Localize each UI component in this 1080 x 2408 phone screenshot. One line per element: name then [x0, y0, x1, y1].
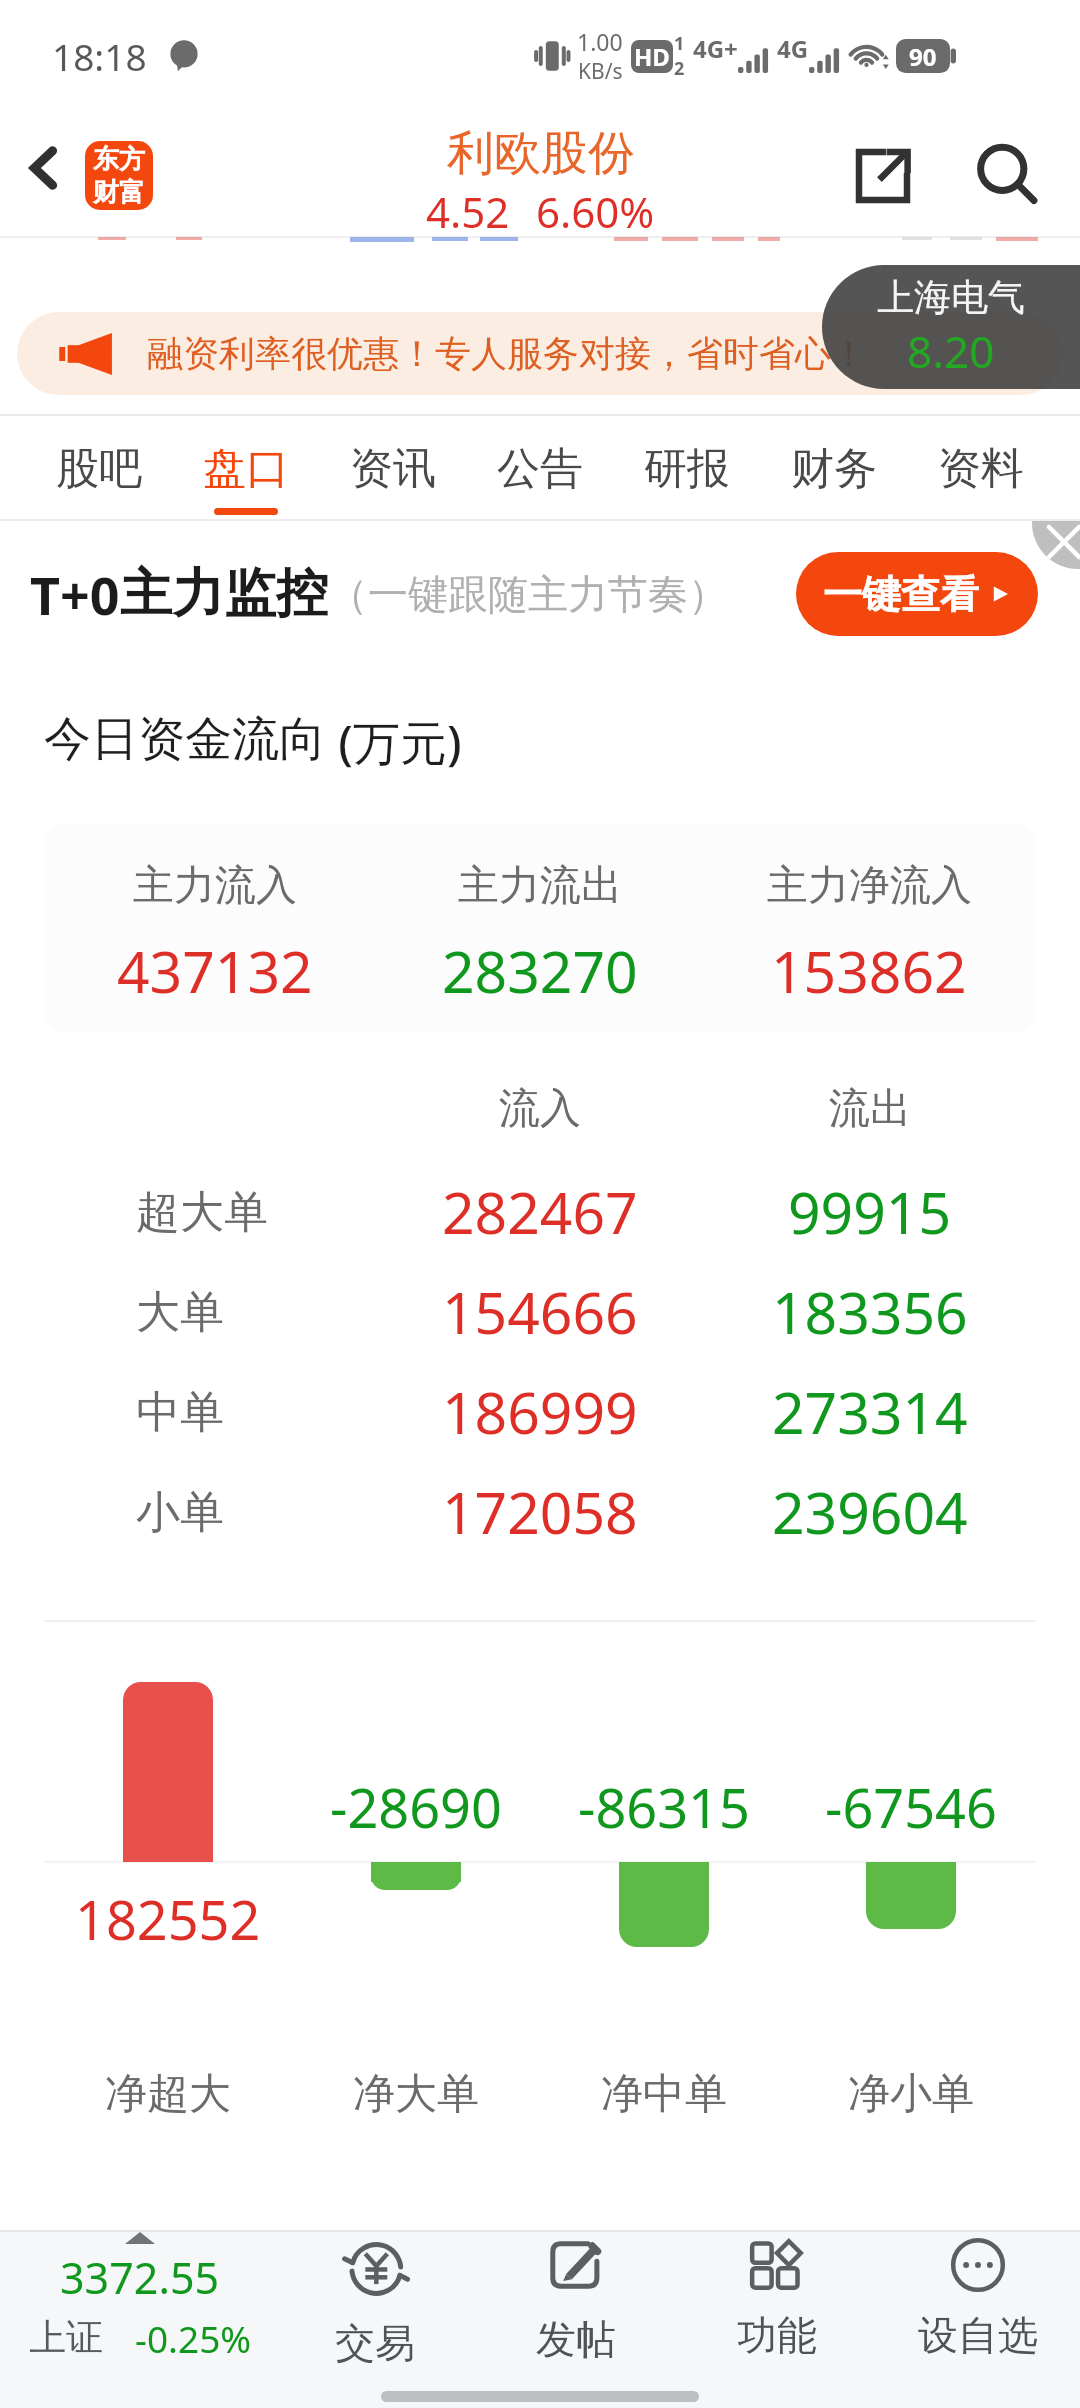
staticText: 182552 — [75, 1882, 261, 1956]
staticText: 融资利率很优惠！专人服务对接，省时省心！ — [147, 331, 867, 376]
staticText: 283270 — [442, 932, 638, 1010]
staticText: 3372.55 — [60, 2248, 220, 2307]
button[interactable]: 资料 — [936, 414, 1026, 515]
staticText: 净小单 — [848, 2068, 974, 2121]
button[interactable]: 中单 — [0, 1362, 1080, 1462]
staticText: 净中单 — [601, 2068, 727, 2121]
staticText: 上海电气 — [877, 274, 1025, 321]
staticText: 研报 — [644, 442, 730, 496]
staticText: 利欧股份 — [447, 124, 635, 183]
button[interactable]: Search — [960, 128, 1056, 224]
staticText: 超大单 — [136, 1185, 268, 1240]
staticText: 主力净流入 — [767, 860, 972, 912]
staticText: (万元) — [326, 710, 462, 774]
button[interactable]: 3372.55 — [0, 2232, 290, 2362]
staticText: -86315 — [578, 1770, 750, 1844]
staticText: 1.00 — [577, 26, 623, 57]
staticText: 资讯 — [350, 442, 436, 496]
button[interactable]: 大单 — [0, 1262, 1080, 1362]
staticText: 6.60% — [536, 183, 655, 240]
button[interactable]: 股吧 — [54, 414, 144, 515]
staticText: 财富 — [93, 176, 145, 209]
button[interactable]: 功能 — [677, 2234, 877, 2364]
button[interactable]: T+0 — [0, 521, 1080, 667]
staticText: 净超大 — [105, 2068, 231, 2121]
staticText: 大单 — [136, 1285, 224, 1340]
button[interactable]: Share — [840, 133, 926, 219]
staticText: 上证 — [29, 2314, 103, 2361]
button[interactable]: 超大单 — [0, 1162, 1080, 1262]
staticText: 273314 — [772, 1373, 968, 1451]
staticText: KB/s — [578, 57, 623, 86]
button[interactable]: 盘口 — [201, 414, 291, 515]
staticText: -67546 — [825, 1770, 997, 1844]
staticText: 东方 — [93, 143, 145, 176]
button[interactable]: 小单 — [0, 1462, 1080, 1562]
staticText: 186999 — [442, 1373, 638, 1451]
button[interactable]: Close ad — [1032, 521, 1080, 569]
staticText: 282467 — [442, 1173, 638, 1251]
staticText: T+0 — [30, 559, 120, 630]
staticText: 90 — [909, 40, 937, 73]
staticText: 资料 — [938, 442, 1024, 496]
button[interactable]: 研报 — [642, 414, 732, 515]
staticText: 8.20 — [907, 321, 995, 381]
staticText: 2 — [674, 56, 685, 81]
staticText: 发帖 — [536, 2314, 616, 2364]
button[interactable] — [45, 824, 1035, 1032]
staticText: 172058 — [442, 1473, 638, 1551]
staticText: 437132 — [117, 932, 313, 1010]
staticText: -0.25% — [135, 2313, 252, 2362]
button[interactable]: 资讯 — [348, 414, 438, 515]
staticText: 盘口 — [203, 442, 289, 496]
staticText: 今日资金流向 — [44, 710, 326, 769]
button[interactable]: 财务 — [789, 414, 879, 515]
staticText: 153862 — [771, 932, 967, 1010]
button[interactable]: 设自选 — [878, 2234, 1078, 2364]
staticText: 股吧 — [56, 442, 142, 496]
staticText: 4G — [777, 32, 809, 65]
staticText: 设自选 — [918, 2310, 1038, 2360]
staticText: 主力流出 — [458, 860, 622, 912]
staticText: -28690 — [330, 1770, 502, 1844]
button[interactable]: 一键查看 — [796, 552, 1038, 636]
staticText: 流出 — [829, 1083, 911, 1135]
staticText: 公告 — [497, 442, 583, 496]
staticText: 18:18 — [52, 31, 147, 81]
staticText: 4G+ — [693, 32, 738, 65]
staticText: HD — [634, 40, 670, 73]
staticText: 一键查看 — [823, 570, 979, 619]
staticText: 净大单 — [353, 2068, 479, 2121]
button[interactable]: 公告 — [495, 414, 585, 515]
button[interactable]: Back — [6, 130, 82, 206]
staticText: 1 — [674, 31, 685, 56]
staticText: 183356 — [772, 1273, 968, 1351]
staticText: 主力流入 — [133, 860, 297, 912]
staticText: 流入 — [499, 1083, 581, 1135]
staticText: （一键跟随主力节奏） — [328, 569, 728, 619]
button[interactable]: 融资利率很优惠！专人服务对接，省时省心！ — [17, 312, 1063, 395]
button[interactable]: 发帖 — [476, 2234, 676, 2364]
staticText: 154666 — [442, 1273, 638, 1351]
button[interactable]: 东方 — [85, 141, 153, 210]
staticText: 交易 — [335, 2318, 415, 2364]
staticText: 239604 — [772, 1473, 968, 1551]
button[interactable]: 交易 — [275, 2234, 475, 2364]
staticText: 中单 — [136, 1385, 224, 1440]
staticText: 小单 — [136, 1485, 224, 1540]
staticText: 4.52 — [426, 183, 510, 240]
staticText: 主力监控 — [120, 561, 328, 627]
staticText: 财务 — [791, 442, 877, 496]
staticText: 功能 — [737, 2310, 817, 2360]
staticText: 99915 — [788, 1173, 952, 1251]
